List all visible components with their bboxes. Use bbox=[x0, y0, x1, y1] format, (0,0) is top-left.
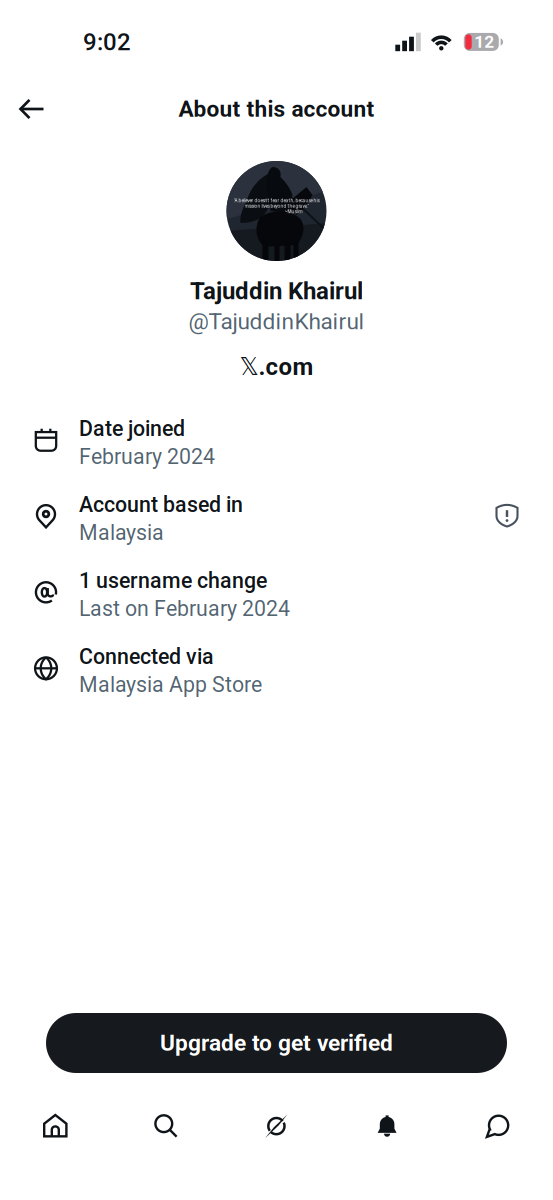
staticText: 𝕏 bbox=[239, 353, 258, 381]
staticText: Date joined bbox=[79, 416, 185, 441]
staticText: Account based in bbox=[79, 492, 243, 517]
staticText: 1 username change bbox=[79, 568, 267, 593]
staticText: 12 bbox=[474, 32, 494, 52]
staticText: 9:02 bbox=[83, 28, 131, 56]
staticText: ~Muslim bbox=[284, 209, 302, 214]
staticText: Upgrade to get verified bbox=[160, 1030, 393, 1056]
button[interactable]: Messages bbox=[442, 1101, 553, 1151]
staticText: Malaysia App Store bbox=[79, 672, 262, 697]
button[interactable]: Grok bbox=[221, 1101, 332, 1151]
button[interactable]: Search bbox=[111, 1101, 221, 1151]
staticText: .com bbox=[258, 353, 313, 381]
button[interactable]: Home bbox=[0, 1101, 111, 1151]
staticText: Tajuddin Khairul bbox=[190, 277, 363, 305]
staticText: Connected via bbox=[79, 644, 214, 669]
button[interactable]: Back bbox=[8, 87, 56, 131]
staticText: Last on February 2024 bbox=[79, 596, 290, 621]
staticText: "A believer doesn't fear death, because … bbox=[233, 198, 319, 203]
staticText: @TajuddinKhairul bbox=[188, 308, 364, 335]
button[interactable]: Upgrade to get verified bbox=[46, 1013, 507, 1073]
staticText: mission lives beyond the grave." bbox=[244, 203, 308, 209]
staticText: February 2024 bbox=[79, 444, 215, 469]
staticText: About this account bbox=[178, 96, 374, 122]
staticText: Malaysia bbox=[79, 520, 164, 545]
button[interactable]: Notifications bbox=[332, 1101, 442, 1151]
